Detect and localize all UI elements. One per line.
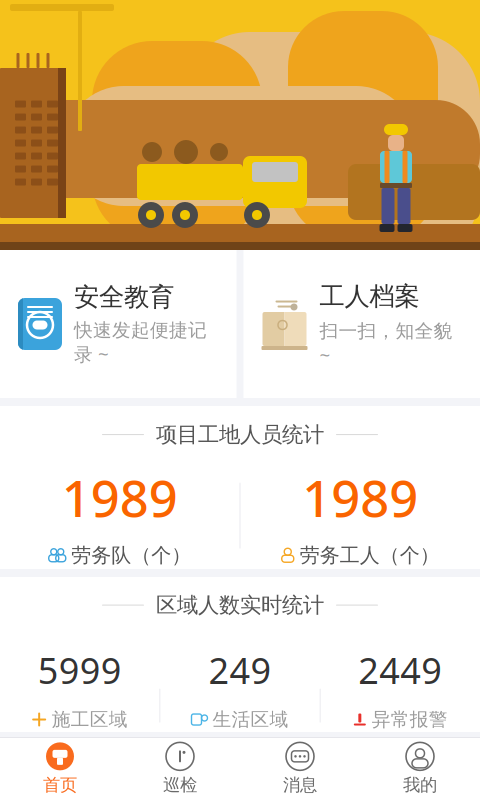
staticText: 扫一扫，知全貌 ~	[319, 318, 452, 367]
button[interactable]: 安全教育	[0, 250, 236, 398]
staticText: 249	[208, 646, 271, 694]
staticText: 异常报警	[372, 708, 448, 731]
staticText: 安全教育	[74, 282, 174, 313]
staticText: 劳务工人（个）	[300, 543, 440, 568]
staticText: 1989	[302, 464, 418, 531]
button[interactable]: 消息	[240, 738, 360, 800]
staticText: 巡检	[163, 774, 197, 796]
staticText: 消息	[283, 774, 317, 796]
staticText: 快速发起便捷记录 ~	[74, 319, 207, 366]
staticText: 劳务队（个）	[71, 543, 191, 568]
staticText: 2449	[358, 646, 442, 694]
button[interactable]: 巡检	[120, 738, 240, 800]
staticText: 生活区域	[212, 708, 288, 731]
staticText: 项目工地人员统计	[156, 421, 324, 448]
staticText: 施工区域	[52, 708, 128, 731]
staticText: 5999	[38, 646, 122, 694]
staticText: 首页	[43, 774, 77, 796]
staticText: 我的	[403, 774, 437, 796]
staticText: 工人档案	[319, 281, 419, 312]
button[interactable]: 工人档案	[243, 250, 480, 398]
button[interactable]: 首页	[0, 738, 120, 800]
button[interactable]: 我的	[360, 738, 480, 800]
staticText: 区域人数实时统计	[156, 592, 324, 618]
staticText: 1989	[62, 464, 178, 531]
